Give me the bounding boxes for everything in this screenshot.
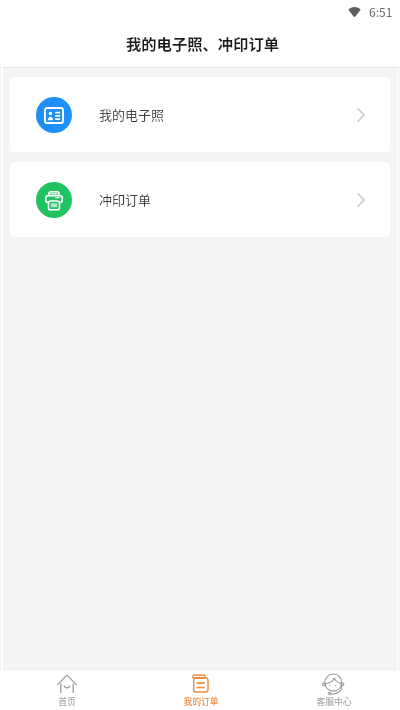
button[interactable]: 我的电子照 bbox=[10, 77, 390, 152]
staticText: 客服中心 bbox=[316, 695, 352, 708]
button[interactable]: 冲印订单 bbox=[10, 162, 390, 237]
staticText: 冲印订单 bbox=[99, 190, 152, 209]
staticText: 我的电子照 bbox=[99, 105, 165, 124]
button[interactable]: My Orders bbox=[134, 670, 267, 710]
button[interactable]: Home bbox=[0, 670, 134, 710]
staticText: 我的订单 bbox=[183, 695, 219, 708]
button[interactable]: Customer Service bbox=[267, 670, 400, 710]
staticText: 我的电子照、冲印订单 bbox=[126, 32, 279, 54]
staticText: 6:51 bbox=[369, 3, 393, 20]
staticText: 首页 bbox=[58, 695, 76, 708]
